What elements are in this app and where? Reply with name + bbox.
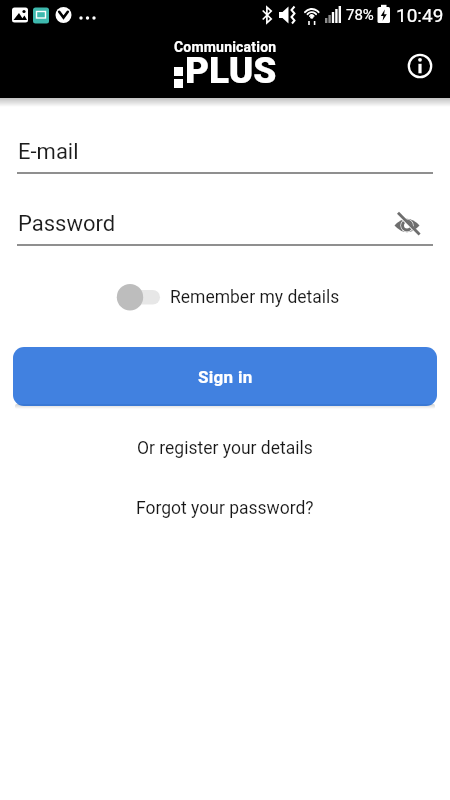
button[interactable]: Sign in: [13, 347, 437, 406]
button[interactable]: E-mail: [0, 132, 450, 176]
staticText: Password: [18, 211, 116, 237]
button[interactable]: Password: [0, 204, 450, 248]
staticText: Or register your details: [137, 438, 313, 459]
button[interactable]: Forgot your password?: [136, 490, 314, 526]
staticText: Remember my details: [170, 287, 340, 308]
staticText: Sign in: [198, 367, 253, 387]
button[interactable]: Or register your details: [137, 430, 313, 466]
button[interactable]: [402, 48, 438, 84]
button[interactable]: [391, 209, 423, 241]
staticText: PLUS: [185, 49, 277, 92]
staticText: Forgot your password?: [136, 498, 314, 519]
button[interactable]: Remember my details: [112, 277, 340, 317]
staticText: 10:49: [396, 4, 444, 26]
staticText: Communication: [174, 39, 277, 55]
staticText: E-mail: [18, 139, 79, 165]
staticText: 78%: [346, 6, 374, 24]
